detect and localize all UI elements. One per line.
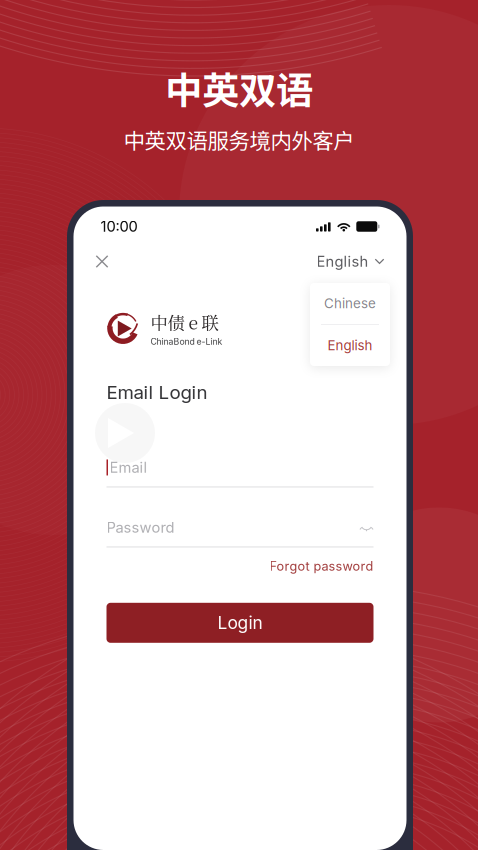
staticText: Login	[217, 612, 262, 633]
staticText: Email Login	[106, 381, 207, 403]
staticText: 中英双语服务境内外客户	[123, 124, 354, 155]
staticText: Chinese	[324, 295, 376, 311]
staticText: 中英双语	[165, 61, 313, 115]
staticText: ChinaBond e-Link	[150, 336, 222, 347]
staticText: Password	[106, 519, 174, 536]
staticText: Email	[109, 459, 147, 476]
button[interactable]: Forgot password	[269, 558, 373, 574]
button[interactable]: Close	[95, 246, 125, 276]
button[interactable]: Chinese	[310, 283, 390, 324]
staticText: 10:00	[100, 218, 137, 235]
staticText: English	[327, 337, 372, 353]
button[interactable]: English	[316, 246, 384, 276]
staticText: English	[316, 253, 368, 270]
staticText: 中债 e 联	[150, 309, 218, 334]
button[interactable]: English	[310, 325, 390, 366]
button[interactable]: Login	[106, 603, 373, 643]
staticText: Forgot password	[269, 558, 373, 574]
